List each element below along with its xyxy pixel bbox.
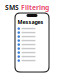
staticText: Messages	[17, 18, 43, 26]
staticText: Filtering	[21, 3, 49, 12]
staticText: SMS	[5, 3, 21, 12]
